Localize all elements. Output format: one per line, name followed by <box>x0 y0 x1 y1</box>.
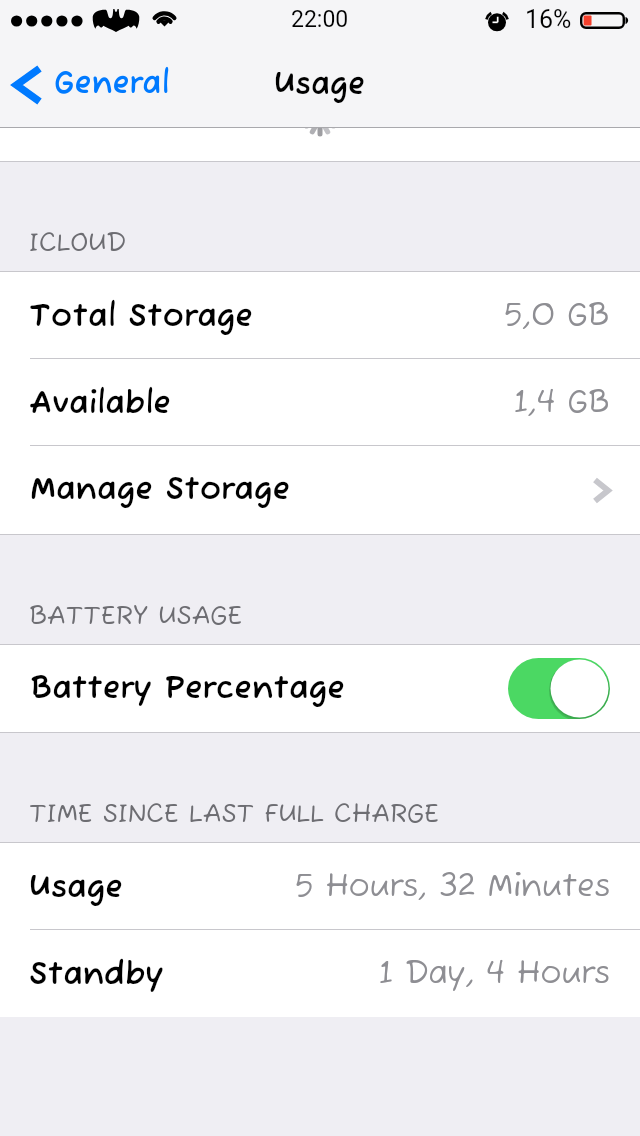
staticText: 1,4 GB <box>514 384 610 423</box>
staticText: Manage Storage <box>30 470 291 510</box>
staticText: 1 Day, 4 Hours <box>379 955 610 994</box>
button[interactable]: Total Storage <box>0 272 640 359</box>
staticText: 5,0 GB <box>504 297 610 336</box>
staticText: 16% <box>525 5 572 34</box>
staticText: Battery Percentage <box>30 669 345 709</box>
staticText: 5 Hours, 32 Minutes <box>295 868 610 907</box>
staticText: General <box>54 65 170 104</box>
button[interactable]: Battery Percentage toggle <box>508 658 610 719</box>
staticText: TIME SINCE LAST FULL CHARGE <box>29 799 440 831</box>
staticText: 22:00 <box>291 6 349 33</box>
button[interactable]: Available <box>0 359 640 446</box>
button[interactable]: Manage Storage <box>0 446 640 534</box>
staticText: Usage <box>29 868 124 908</box>
button[interactable]: General <box>0 65 180 104</box>
button[interactable]: Standby <box>0 930 640 1017</box>
button[interactable]: Usage <box>0 843 640 930</box>
staticText: BATTERY USAGE <box>29 601 243 633</box>
staticText: Standby <box>29 955 164 995</box>
staticText: ICLOUD <box>29 228 127 260</box>
staticText: Usage <box>274 66 366 105</box>
staticText: Total Storage <box>29 297 254 337</box>
staticText: Available <box>29 384 172 424</box>
